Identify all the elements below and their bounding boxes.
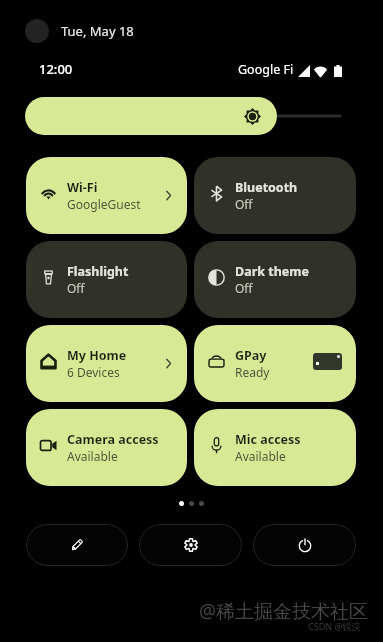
- staticText: @稀土掘金技术社区: [199, 598, 369, 624]
- staticText: 6 Devices: [67, 364, 120, 380]
- button[interactable]: Camera access: [26, 409, 187, 486]
- button[interactable]: Mic access: [194, 409, 356, 486]
- staticText: CSDN @锐浣: [308, 620, 361, 632]
- button[interactable]: Edit: [26, 524, 128, 566]
- staticText: Off: [235, 280, 253, 296]
- staticText: Google Fi: [238, 61, 294, 78]
- staticText: 12:00: [39, 60, 73, 78]
- button[interactable]: Flashlight: [26, 241, 187, 318]
- button[interactable]: Power: [253, 524, 356, 566]
- staticText: GoogleGuest: [67, 196, 141, 212]
- staticText: Bluetooth: [235, 179, 298, 196]
- staticText: My Home: [67, 347, 127, 364]
- button[interactable]: Bluetooth: [194, 157, 356, 234]
- staticText: Mic access: [235, 431, 301, 448]
- staticText: Available: [235, 448, 286, 464]
- button[interactable]: Dark theme: [194, 241, 356, 318]
- staticText: Flashlight: [67, 263, 129, 280]
- button[interactable]: My Home: [26, 325, 187, 402]
- button[interactable]: Account: [25, 19, 49, 43]
- button[interactable]: Brightness: [25, 97, 277, 135]
- button[interactable]: Settings: [139, 524, 242, 566]
- staticText: Camera access: [67, 431, 159, 448]
- staticText: Available: [67, 448, 118, 464]
- staticText: Tue, May 18: [61, 22, 134, 40]
- button[interactable]: Wi-Fi: [26, 157, 187, 234]
- staticText: Wi-Fi: [67, 179, 98, 196]
- button[interactable]: GPay: [194, 325, 356, 402]
- staticText: Off: [235, 196, 253, 212]
- staticText: Ready: [235, 364, 270, 380]
- staticText: GPay: [235, 347, 267, 364]
- staticText: Off: [67, 280, 85, 296]
- staticText: Dark theme: [235, 263, 309, 280]
